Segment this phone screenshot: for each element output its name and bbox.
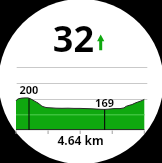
button[interactable]: Elevation profile xyxy=(0,0,162,163)
